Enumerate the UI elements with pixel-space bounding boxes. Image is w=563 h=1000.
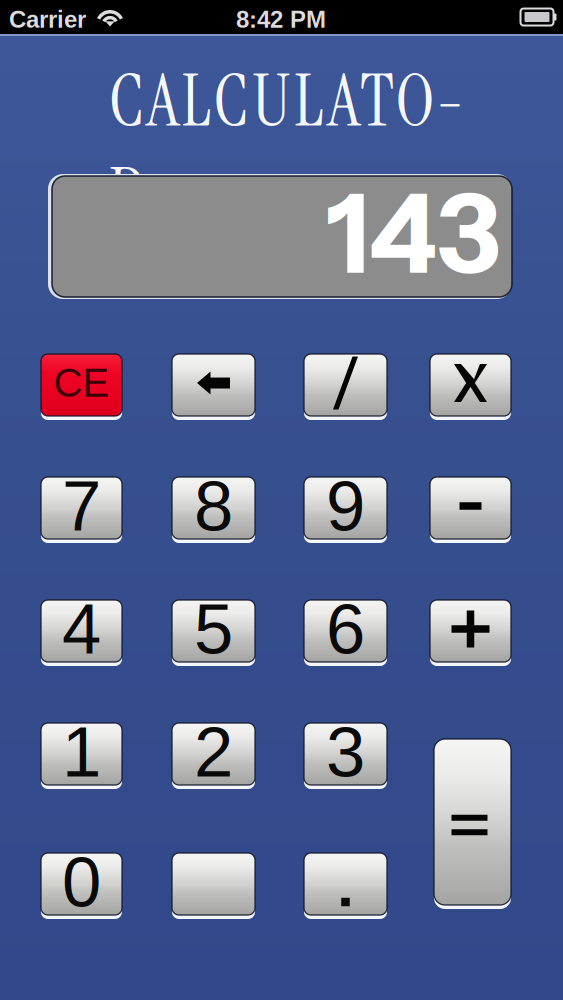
button[interactable]: 0 [41,851,122,917]
staticText: CE [53,361,109,405]
staticText: 8 [194,466,233,545]
staticText: 9 [326,466,365,545]
button[interactable]: Backspace [172,352,255,418]
button[interactable]: 7 [41,475,122,541]
staticText: CALCULATOR [109,54,474,148]
staticText: 7 [62,466,101,545]
button[interactable]: Equals [434,737,511,907]
button[interactable]: Plus [430,598,511,664]
button[interactable]: 2 [172,721,255,787]
staticText: 3 [326,712,365,791]
button[interactable]: 8 [172,475,255,541]
button[interactable]: 6 [304,598,387,664]
button[interactable]: 3 [304,721,387,787]
button[interactable]: 4 [41,598,122,664]
button[interactable]: Divide [304,352,387,418]
staticText: 2 [194,712,233,791]
staticText: 143 [327,167,501,300]
staticText: 6 [326,589,365,668]
staticText: 4 [62,589,101,668]
staticText: 8:42 PM [236,6,326,33]
button[interactable]: Minus [430,475,511,541]
button[interactable]: Decimal point [304,851,387,917]
button[interactable]: Clear entry [41,352,122,418]
staticText: 5 [194,589,233,668]
button[interactable]: Blank [172,851,255,917]
button[interactable]: 9 [304,475,387,541]
staticText: 0 [62,842,101,921]
button[interactable]: 1 [41,721,122,787]
staticText: Carrier [9,6,86,33]
button[interactable]: Multiply [430,352,511,418]
staticText: 1 [62,712,101,791]
button[interactable]: 5 [172,598,255,664]
